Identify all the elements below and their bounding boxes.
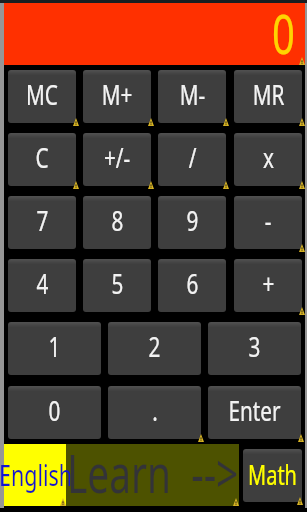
- staticText: 3: [248, 327, 261, 365]
- button[interactable]: MR: [234, 70, 302, 123]
- staticText: MR: [253, 75, 284, 113]
- button[interactable]: English: [4, 444, 66, 506]
- staticText: 5: [111, 264, 124, 302]
- button[interactable]: 1: [8, 322, 101, 375]
- staticText: -: [264, 201, 272, 239]
- staticText: 0: [48, 391, 61, 429]
- staticText: 8: [111, 201, 124, 239]
- staticText: /: [188, 138, 196, 176]
- button[interactable]: 0: [8, 386, 101, 439]
- button[interactable]: [67, 444, 239, 506]
- button[interactable]: 6: [158, 259, 226, 312]
- staticText: 6: [186, 264, 199, 302]
- staticText: MC: [26, 75, 58, 113]
- staticText: x: [263, 138, 274, 176]
- button[interactable]: 3: [208, 322, 301, 375]
- button[interactable]: -: [234, 196, 302, 249]
- button[interactable]: 7: [8, 196, 76, 249]
- button[interactable]: M-: [158, 70, 226, 123]
- staticText: M+: [101, 75, 133, 113]
- staticText: +: [262, 264, 275, 302]
- button[interactable]: x: [234, 133, 302, 186]
- staticText: Math: [248, 456, 297, 493]
- button[interactable]: C: [8, 133, 76, 186]
- staticText: .: [152, 391, 158, 429]
- staticText: 7: [36, 201, 49, 239]
- button[interactable]: 9: [158, 196, 226, 249]
- staticText: M-: [180, 75, 205, 113]
- staticText: +/-: [104, 138, 130, 176]
- button[interactable]: +: [234, 259, 302, 312]
- staticText: 2: [148, 327, 161, 365]
- button[interactable]: 5: [83, 259, 151, 312]
- button[interactable]: /: [158, 133, 226, 186]
- button[interactable]: M+: [83, 70, 151, 123]
- staticText: 9: [186, 201, 199, 239]
- button[interactable]: 2: [108, 322, 201, 375]
- button[interactable]: MC: [8, 70, 76, 123]
- staticText: Enter: [228, 391, 281, 429]
- button[interactable]: 8: [83, 196, 151, 249]
- button[interactable]: 4: [8, 259, 76, 312]
- staticText: 0: [272, 0, 295, 70]
- staticText: English: [0, 455, 72, 494]
- staticText: Learn -->: [67, 437, 239, 508]
- staticText: 1: [48, 327, 61, 365]
- button[interactable]: +/-: [83, 133, 151, 186]
- button[interactable]: Math: [243, 449, 302, 502]
- button[interactable]: Enter: [208, 386, 301, 439]
- button[interactable]: .: [108, 386, 201, 439]
- staticText: 4: [36, 264, 49, 302]
- staticText: C: [35, 138, 49, 176]
